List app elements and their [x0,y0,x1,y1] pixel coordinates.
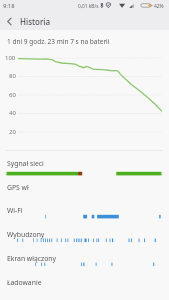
staticText: Wybudzony [7,230,45,239]
staticText: 100 [5,54,16,62]
staticText: GPS wł [7,183,29,192]
button[interactable]: Ekran włączony [0,254,169,276]
button[interactable]: GPS wł [0,183,169,205]
staticText: Ekran włączony [7,254,57,263]
button[interactable]: Wybudzony [0,230,169,252]
button[interactable]: Wi-Fi [0,206,169,228]
staticText: 42% [154,3,164,10]
button[interactable]: Sygnał sieci [0,159,169,181]
staticText: 40 [9,109,16,117]
staticText: Ładowanie [7,278,42,287]
staticText: Wi-Fi [7,206,23,215]
staticText: 9:18 [3,2,15,10]
staticText: Sygnał sieci [7,159,44,168]
staticText: Historia [20,16,51,27]
button[interactable]: Back [0,12,18,30]
staticText: 80 [9,72,16,80]
staticText: 0,01 kB/s [78,3,99,10]
staticText: 20 [9,128,16,136]
button[interactable]: Ładowanie [0,278,169,300]
staticText: 1 dni 9 godz. 23 min 7 s na baterii [7,37,110,46]
staticText: 60 [9,91,16,99]
